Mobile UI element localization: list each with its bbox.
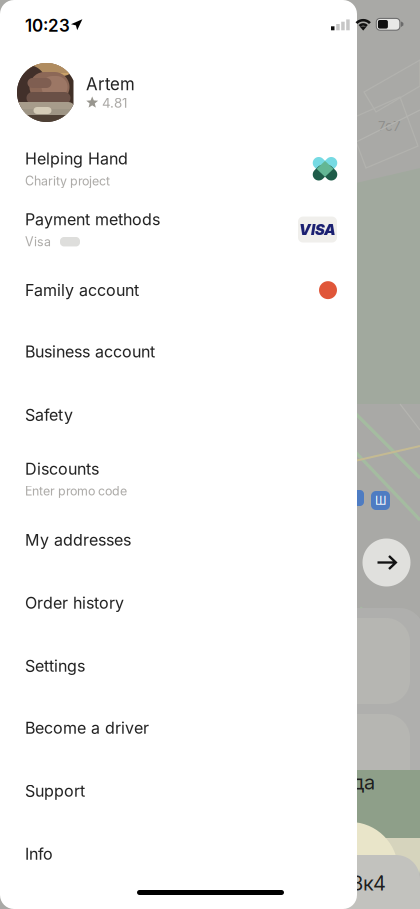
staticText: Ш (375, 493, 386, 508)
staticText: Visa (25, 234, 51, 249)
button[interactable]: Support (0, 760, 357, 822)
staticText: Discounts (25, 459, 99, 479)
button[interactable]: Business account (0, 321, 357, 383)
staticText: 10:23 (25, 15, 70, 36)
button[interactable]: Discounts (0, 448, 357, 510)
staticText: VISA (299, 221, 336, 238)
staticText: Support (25, 781, 85, 801)
staticText: Payment methods (25, 210, 160, 229)
button[interactable]: Helping Hand (0, 138, 357, 200)
button[interactable]: Family account (0, 259, 357, 321)
button[interactable]: Safety (0, 384, 357, 446)
staticText: Info (25, 844, 53, 864)
button[interactable]: Order history (0, 572, 357, 634)
staticText: Settings (25, 656, 85, 676)
staticText: Enter promo code (25, 483, 127, 498)
staticText: My addresses (25, 530, 131, 550)
button[interactable]: Artem (0, 47, 357, 137)
staticText: еда (340, 770, 375, 794)
staticText: 4.81 (102, 95, 127, 111)
button[interactable]: Become a driver (0, 697, 357, 759)
staticText: Artem (86, 74, 135, 94)
button[interactable]: Payment methods (0, 198, 357, 261)
staticText: Charity project (25, 173, 110, 188)
staticText: Helping Hand (25, 149, 128, 168)
button[interactable]: Settings (0, 635, 357, 697)
staticText: 7c7 (378, 118, 401, 134)
staticText: Family account (25, 280, 139, 300)
staticText: Become a driver (25, 718, 149, 738)
staticText: Safety (25, 405, 73, 425)
button[interactable]: Open (362, 538, 410, 586)
staticText: л8к4 (340, 871, 386, 895)
staticText: Order history (25, 593, 124, 613)
button[interactable]: My addresses (0, 509, 357, 571)
staticText: Business account (25, 342, 155, 361)
button[interactable]: Info (0, 823, 357, 885)
